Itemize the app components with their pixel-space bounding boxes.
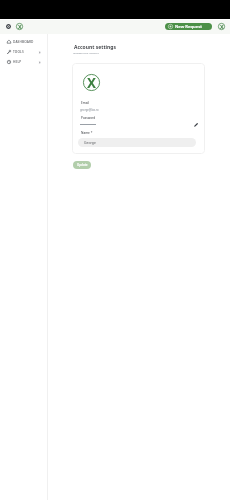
staticText: DASHBOARD (13, 40, 34, 44)
staticText: Password (81, 116, 96, 120)
staticText: Manage your account (73, 51, 99, 54)
staticText: Email (81, 101, 90, 105)
button[interactable]: Home (16, 23, 23, 30)
staticText: TOOLS (13, 50, 24, 54)
staticText: X (87, 74, 97, 91)
button[interactable]: Edit password (192, 121, 199, 128)
button[interactable]: TOOLS (0, 47, 47, 57)
button[interactable]: DASHBOARD (0, 37, 47, 47)
staticText: Account settings (74, 44, 116, 51)
staticText: Name * (81, 131, 93, 135)
staticText: george@lios.ro (80, 108, 99, 112)
staticText: New Request (175, 24, 202, 30)
staticText: Update (77, 163, 88, 167)
staticText: X (220, 23, 224, 30)
staticText: HELP (13, 60, 22, 64)
button[interactable]: HELP (0, 57, 47, 67)
button[interactable]: Menu (3, 21, 13, 31)
staticText: X (18, 23, 22, 30)
staticText: George (84, 140, 96, 145)
button[interactable]: Account (218, 23, 225, 30)
button[interactable]: Update (73, 161, 91, 169)
button[interactable]: George (78, 138, 196, 147)
button[interactable]: New Request (165, 23, 212, 30)
